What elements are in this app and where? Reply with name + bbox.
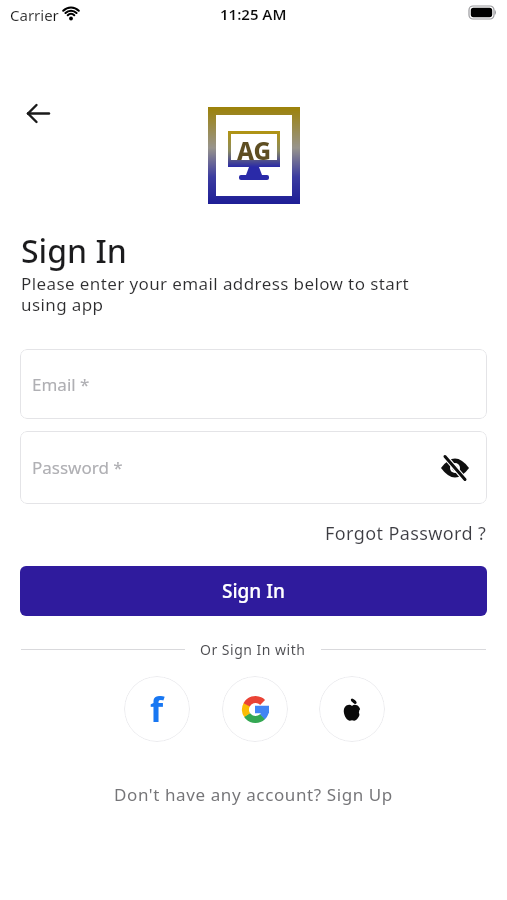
button[interactable] [18, 95, 58, 131]
staticText: f [150, 686, 164, 732]
staticText: Please enter your email address below to… [21, 272, 410, 316]
button[interactable] [439, 452, 471, 484]
button[interactable]: Sign In [20, 566, 487, 616]
button[interactable]: Email * [20, 349, 487, 419]
staticText: Forgot Password ? [325, 521, 487, 546]
staticText: 11:25 AM [220, 4, 287, 24]
button[interactable]: Don't have any account? Sign Up [114, 783, 393, 806]
button[interactable] [319, 676, 385, 742]
button[interactable] [222, 676, 288, 742]
staticText: AG [237, 134, 272, 160]
staticText: Carrier [10, 5, 59, 25]
button[interactable]: Forgot Password ? [325, 521, 487, 546]
staticText: Don't have any account? Sign Up [114, 783, 393, 806]
staticText: Email * [32, 373, 90, 396]
staticText: Password * [32, 456, 123, 479]
staticText: Or Sign In with [200, 640, 306, 659]
staticText: Sign In [21, 229, 127, 273]
staticText: Sign In [222, 578, 285, 604]
button[interactable]: Password * [20, 431, 487, 504]
button[interactable]: f [124, 676, 190, 742]
